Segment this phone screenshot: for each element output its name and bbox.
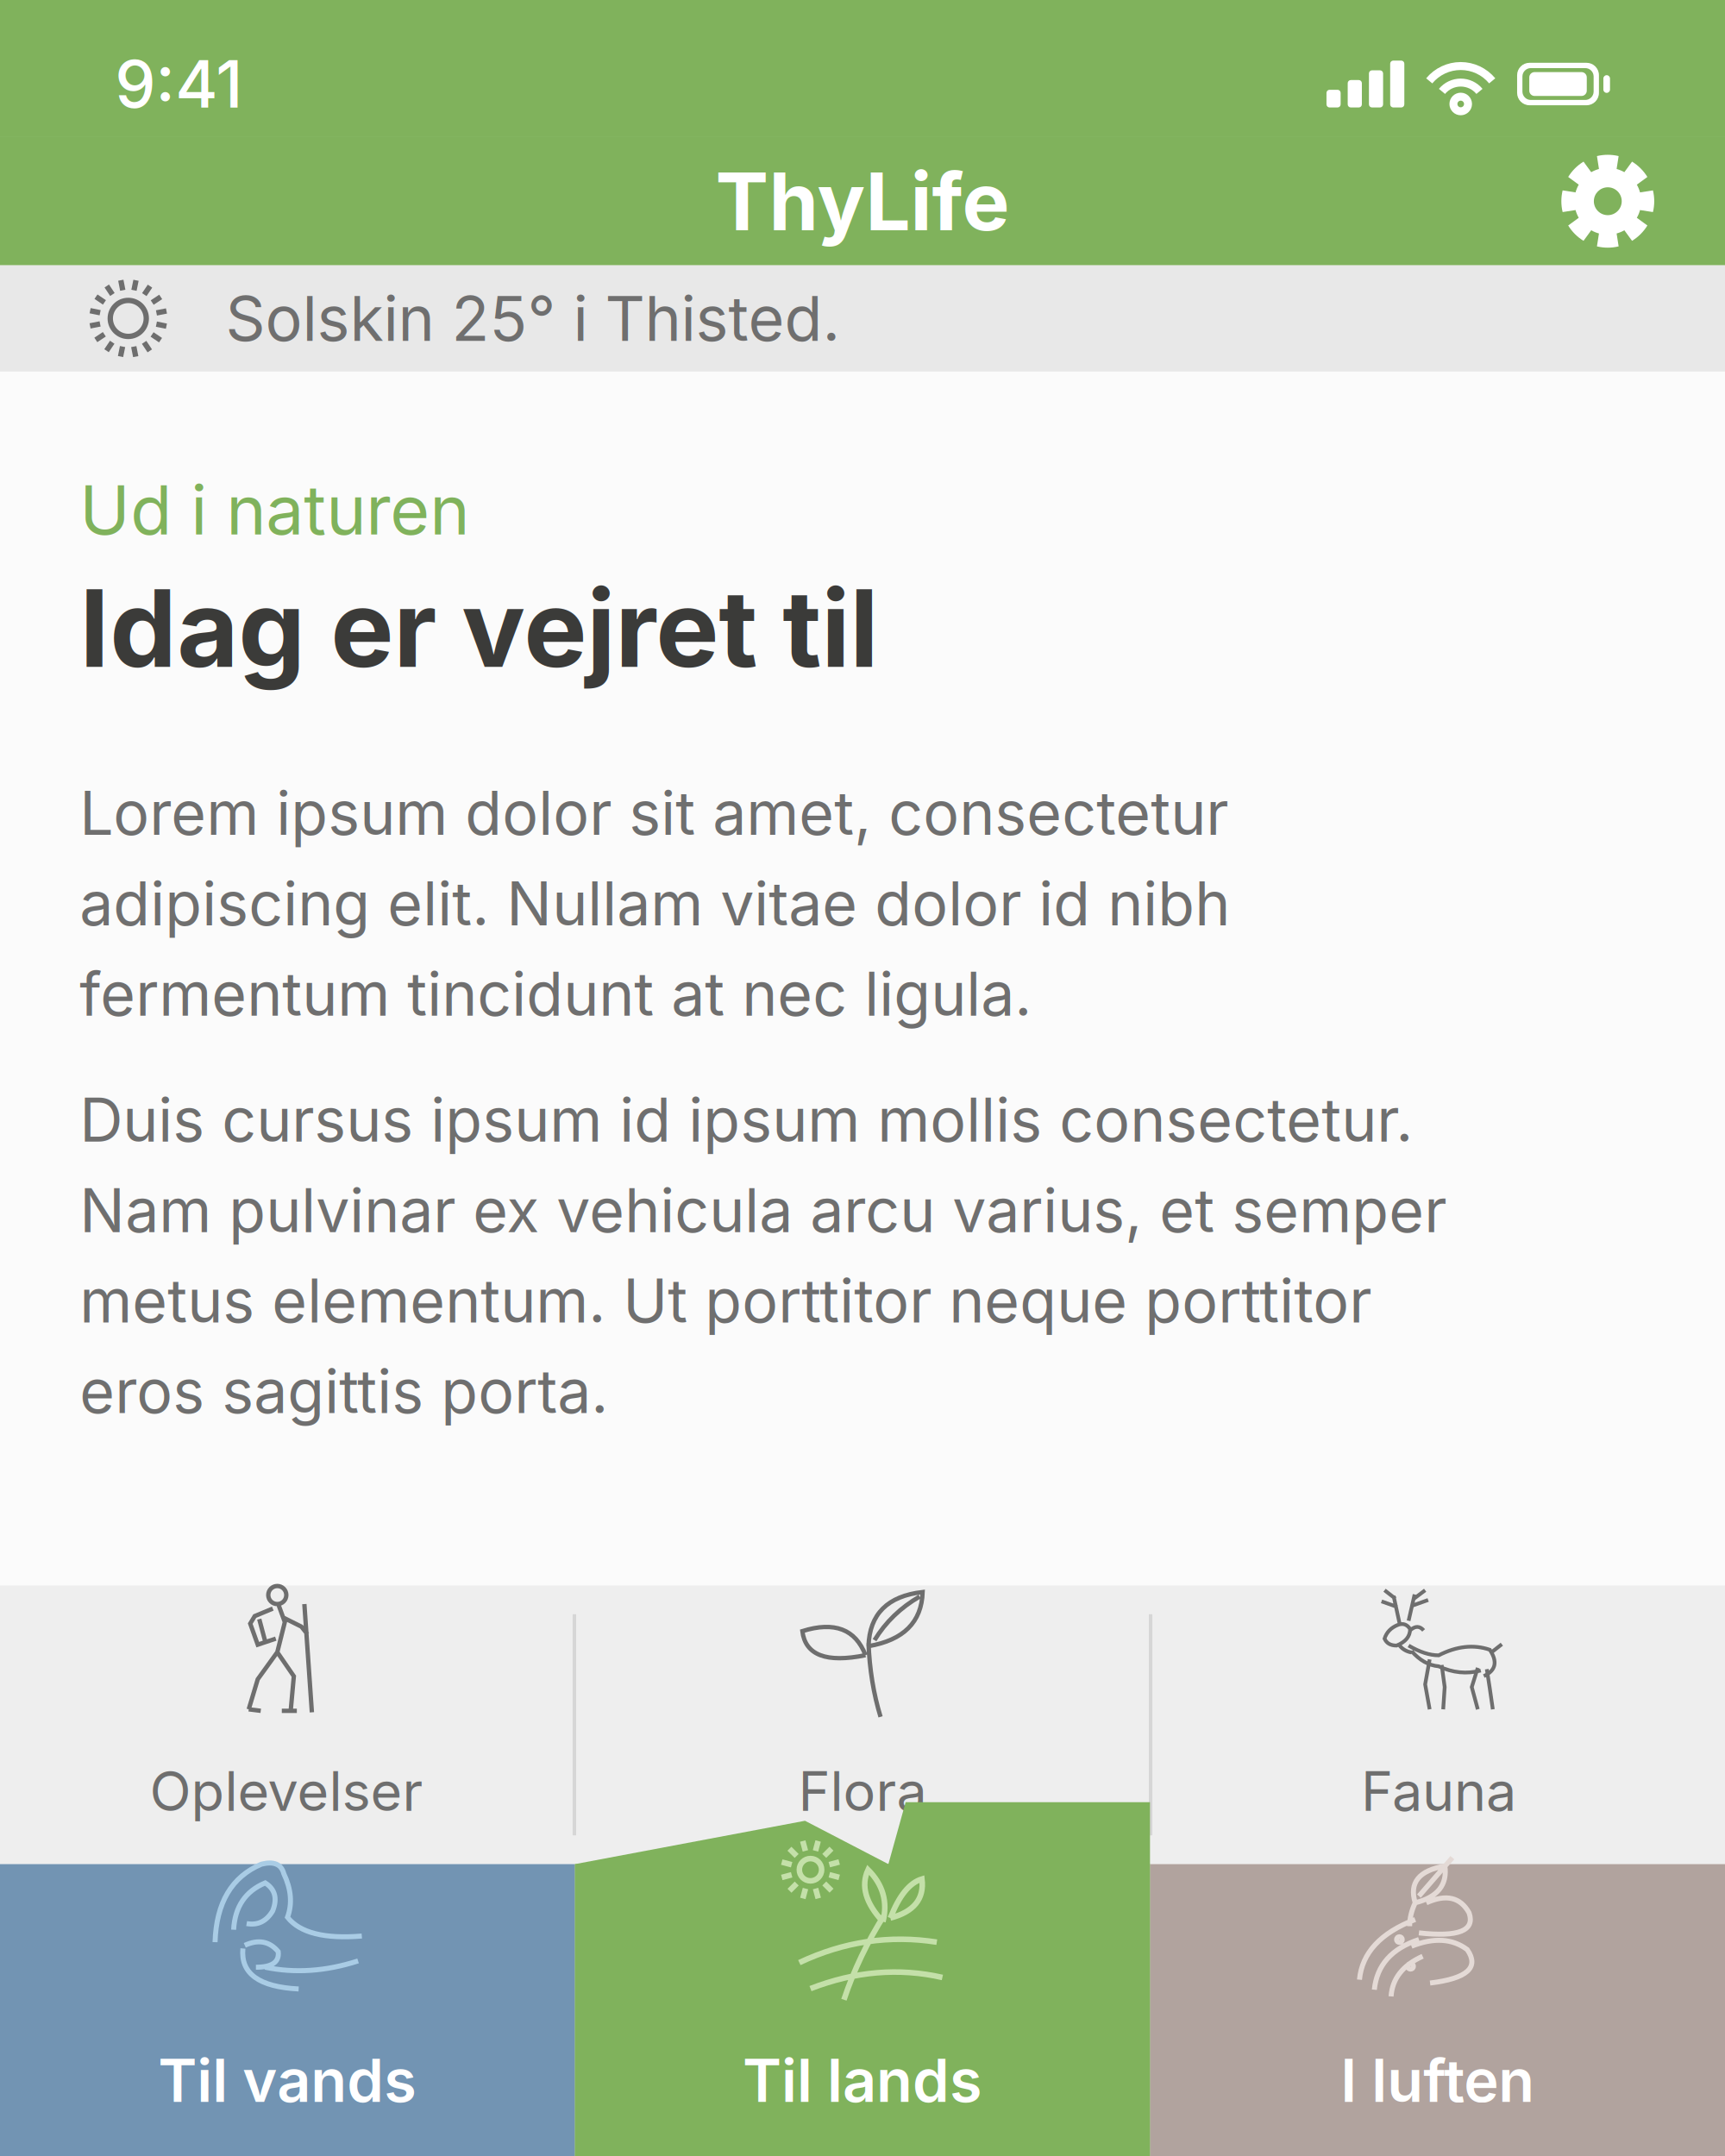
staticText: Ud i naturen — [80, 469, 469, 551]
staticText: Solskin 25° i Thisted. — [226, 281, 841, 356]
staticText: Til lands — [743, 2045, 982, 2116]
staticText: Oplevelser — [150, 1758, 423, 1824]
staticText: Idag er vejret til — [80, 564, 878, 693]
button[interactable]: Fauna — [1152, 1537, 1725, 1912]
staticText: Duis cursus ipsum id ipsum mollis consec… — [80, 1083, 1447, 1428]
button[interactable]: Til vands — [0, 1864, 575, 2156]
staticText: Flora — [798, 1758, 927, 1824]
button[interactable]: Til lands — [575, 1864, 1150, 2156]
staticText: 9:41 — [115, 45, 243, 123]
staticText: Fauna — [1361, 1758, 1516, 1824]
staticText: ThyLife — [715, 153, 1010, 249]
staticText: Lorem ipsum dolor sit amet, consectetur … — [80, 777, 1230, 1030]
staticText: Til vands — [158, 2045, 417, 2116]
button[interactable]: Ud i naturen — [0, 372, 1725, 1428]
staticText: I luften — [1340, 2045, 1535, 2116]
button[interactable]: I luften — [1150, 1864, 1725, 2156]
staticText: Til lands — [743, 2045, 982, 2116]
button[interactable]: Flora — [576, 1537, 1149, 1912]
button[interactable]: Til lands — [575, 1802, 1150, 2156]
button[interactable]: Settings — [1491, 119, 1725, 283]
button[interactable]: Oplevelser — [0, 1537, 573, 1912]
